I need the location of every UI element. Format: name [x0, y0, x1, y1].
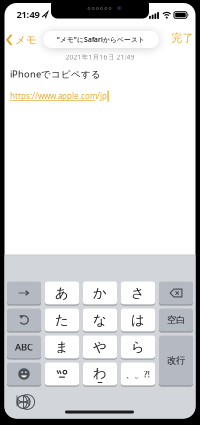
staticText: “メモ”にSafariからペースト: [57, 35, 145, 44]
button[interactable]: [83, 362, 117, 385]
button[interactable]: か: [83, 281, 117, 304]
button[interactable]: は: [121, 308, 155, 331]
staticText: ま: [55, 339, 69, 355]
button[interactable]: やり直し: [7, 308, 41, 331]
button[interactable]: [159, 335, 193, 385]
staticText: 完了: [171, 31, 193, 44]
staticText: あ: [55, 285, 69, 301]
staticText: https://www.apple.com/jp: [10, 91, 107, 101]
staticText: 、。?!: [125, 368, 150, 380]
staticText: は: [131, 312, 145, 328]
button[interactable]: メモ: [6, 33, 50, 47]
staticText: 21:49: [16, 8, 39, 21]
button[interactable]: https://www.apple.com/jp: [10, 91, 107, 101]
button[interactable]: [159, 308, 193, 331]
staticText: iPhoneでコピペする: [10, 68, 101, 80]
button[interactable]: あ: [45, 281, 79, 304]
staticText: か: [93, 285, 107, 301]
staticText: な: [93, 312, 107, 328]
button[interactable]: 完了: [171, 31, 193, 44]
staticText: ABC: [15, 341, 33, 353]
staticText: 改行: [167, 355, 185, 366]
staticText: わ: [93, 365, 107, 381]
button[interactable]: [7, 335, 41, 358]
button[interactable]: [121, 362, 155, 385]
staticText: 空白: [167, 314, 185, 326]
button[interactable]: カーソル移動: [7, 281, 41, 304]
button[interactable]: な: [83, 308, 117, 331]
button[interactable]: ま: [45, 335, 79, 358]
button[interactable]: た: [45, 308, 79, 331]
button[interactable]: さ: [121, 281, 155, 304]
button[interactable]: や: [83, 335, 117, 358]
button[interactable]: ら: [121, 335, 155, 358]
button[interactable]: 削除: [159, 281, 193, 304]
button[interactable]: 絵文字: [7, 362, 41, 385]
staticText: 2021年1月16日 21:49: [65, 53, 134, 61]
staticText: ら: [131, 339, 145, 355]
staticText: さ: [131, 285, 145, 301]
staticText: や: [93, 339, 107, 355]
button[interactable]: 濁点・小文字: [45, 362, 79, 385]
staticText: た: [55, 312, 69, 328]
button[interactable]: 次のキーボード: [17, 395, 30, 408]
staticText: メモ: [15, 33, 37, 46]
